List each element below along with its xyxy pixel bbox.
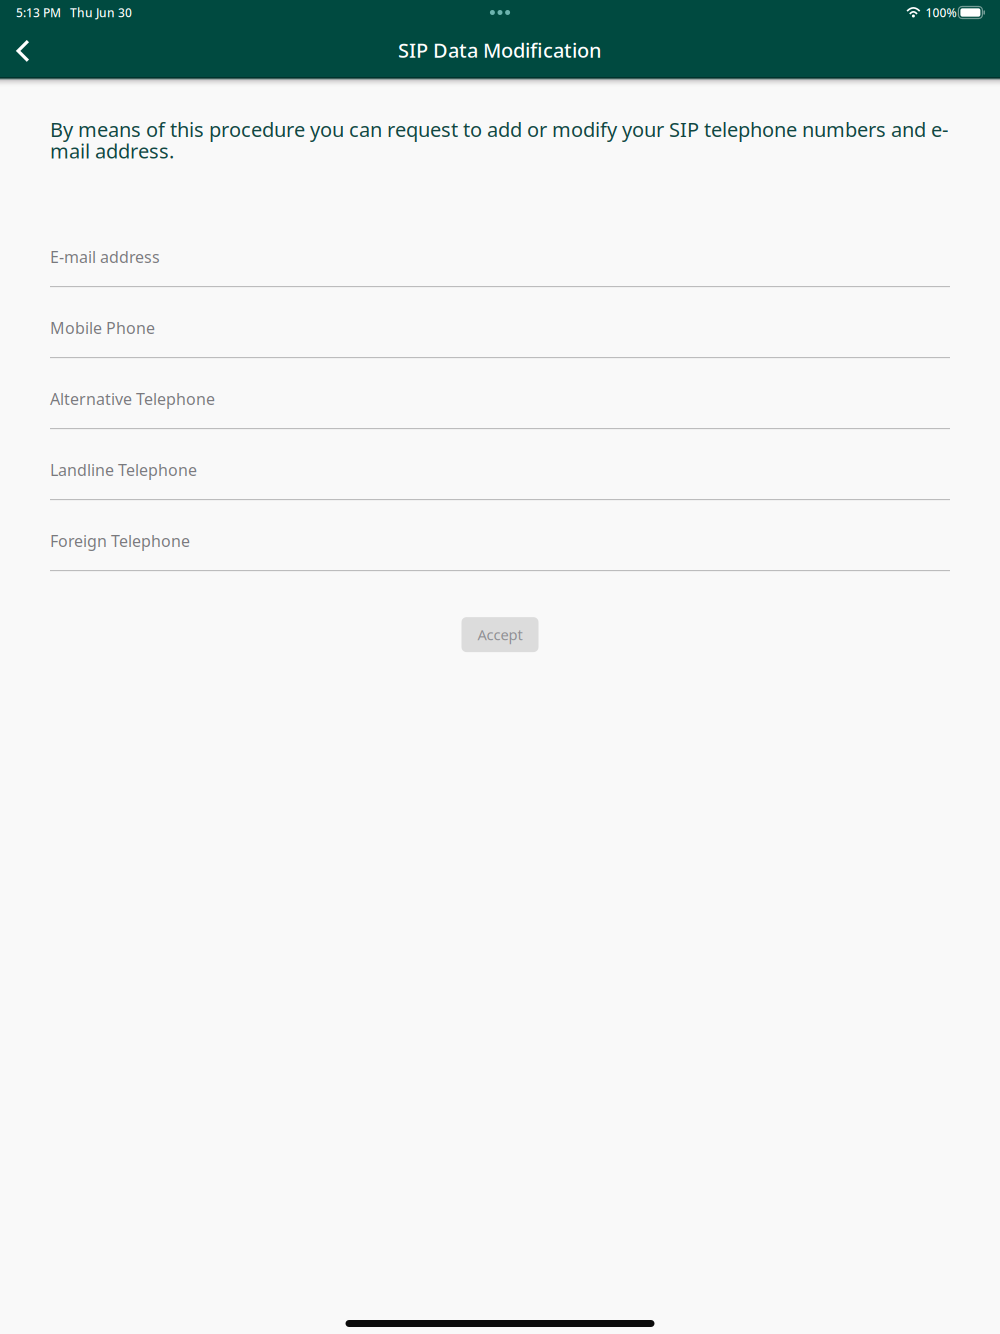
staticText: Thu Jun 30 (70, 4, 132, 20)
staticText: E-mail address (50, 246, 160, 267)
button[interactable]: E-mail address (0, 216, 1000, 287)
button[interactable]: Foreign Telephone (0, 500, 1000, 571)
staticText: Accept (477, 625, 522, 644)
button[interactable]: Accept (461, 617, 538, 652)
staticText: Landline Telephone (50, 459, 197, 480)
staticText: 100% (925, 4, 956, 20)
staticText: Mobile Phone (50, 317, 155, 338)
button[interactable]: Back (0, 27, 46, 75)
button[interactable]: Landline Telephone (0, 429, 1000, 500)
button[interactable]: Alternative Telephone (0, 358, 1000, 429)
staticText: 5:13 PM (16, 4, 61, 20)
staticText: By means of this procedure you can reque… (50, 116, 948, 164)
staticText: Foreign Telephone (50, 530, 190, 551)
staticText: Alternative Telephone (50, 388, 215, 409)
staticText: SIP Data Modification (398, 37, 602, 63)
button[interactable]: Mobile Phone (0, 287, 1000, 358)
